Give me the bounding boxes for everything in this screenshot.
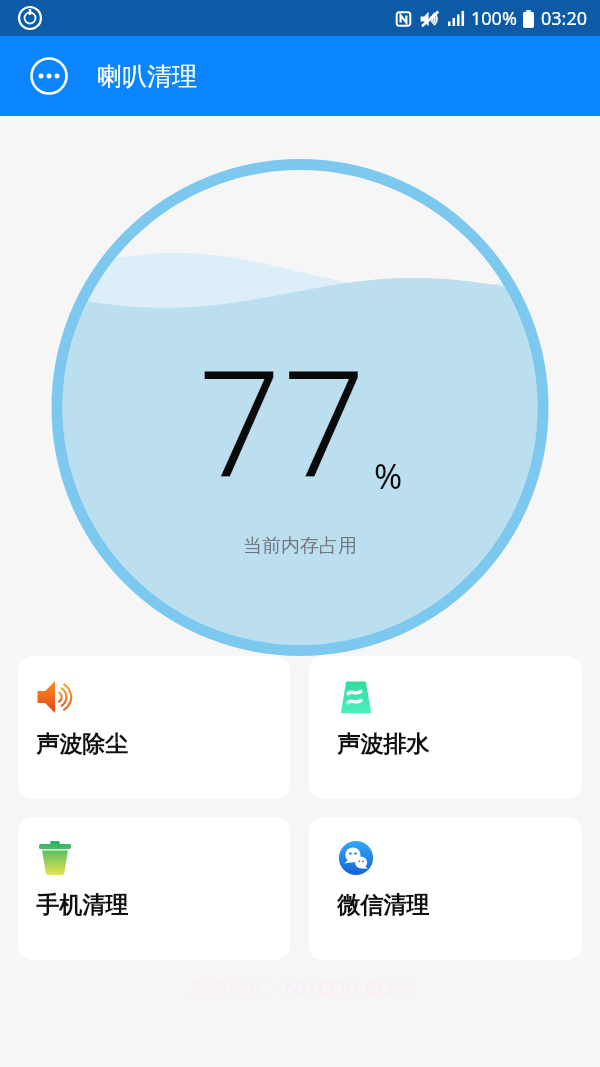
button[interactable]: 微信清理 — [309, 817, 582, 960]
staticText: 77 — [197, 319, 367, 521]
button[interactable]: 声波排水 — [309, 656, 582, 799]
staticText: % — [374, 453, 403, 499]
button[interactable]: More options — [24, 51, 74, 101]
button[interactable]: 手机清理 — [18, 817, 290, 960]
staticText: 喇叭清理 — [97, 61, 197, 92]
staticText: 100% — [471, 6, 517, 31]
staticText: 手机清理 — [36, 891, 128, 920]
staticText: 声波排水 — [337, 730, 429, 759]
staticText: 微信清理 — [337, 891, 429, 920]
staticText: 当前内存占用 — [243, 534, 357, 558]
button[interactable]: 声波除尘 — [18, 656, 290, 799]
staticText: 声波除尘 — [36, 730, 128, 759]
staticText: 乐享轻汇 · NIYCQH.COM — [189, 974, 411, 1001]
staticText: 03:20 — [541, 6, 588, 31]
